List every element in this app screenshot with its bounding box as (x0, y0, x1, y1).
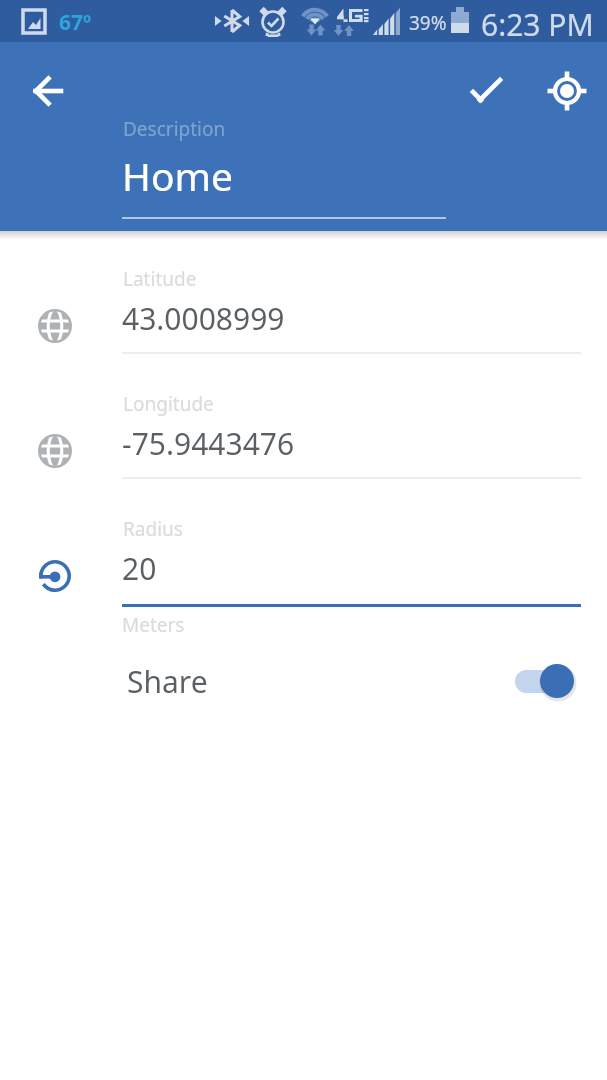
staticText: Longitude (123, 391, 214, 417)
button[interactable]: Back (20, 64, 74, 118)
staticText: 6:23 PM (481, 4, 594, 45)
staticText: 67º (59, 8, 92, 37)
staticText: Home (122, 149, 233, 202)
button[interactable]: Latitude (122, 257, 582, 353)
button[interactable]: Radius (122, 507, 582, 603)
staticText: Latitude (123, 266, 197, 292)
staticText: -75.9443476 (122, 423, 295, 464)
staticText: 39% (409, 10, 447, 36)
staticText: Share (127, 661, 208, 702)
button[interactable]: Description (122, 108, 452, 223)
button[interactable] (505, 655, 590, 707)
button[interactable]: Share (0, 648, 607, 714)
button[interactable]: Save (459, 64, 513, 118)
staticText: Meters (122, 612, 185, 638)
staticText: 20 (122, 548, 157, 589)
button[interactable]: Longitude (122, 382, 582, 478)
button[interactable]: My location (540, 64, 594, 118)
staticText: 43.0008999 (122, 298, 285, 339)
staticText: Description (123, 116, 226, 142)
staticText: Radius (123, 516, 183, 542)
